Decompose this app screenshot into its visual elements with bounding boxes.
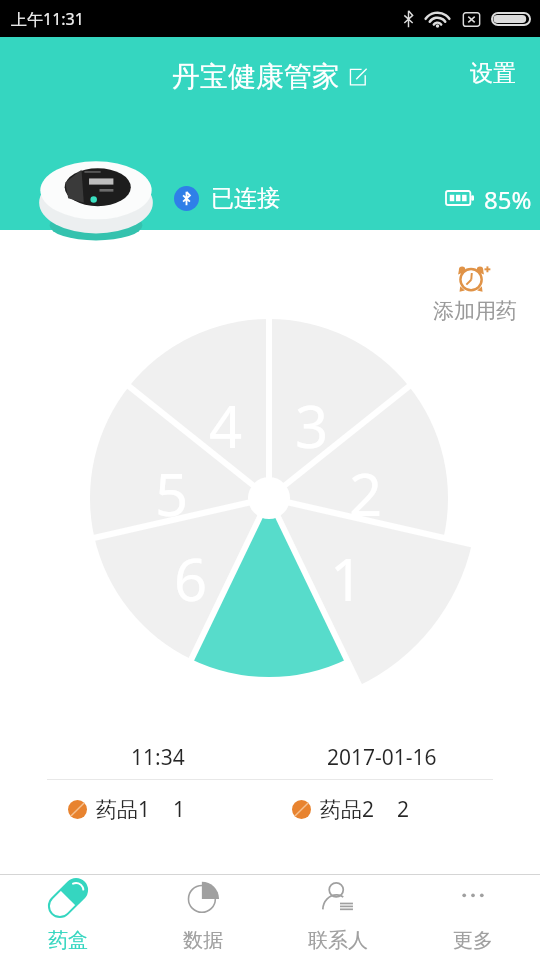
staticText: 4 xyxy=(209,386,243,465)
staticText: 6 xyxy=(174,539,208,618)
button[interactable]: 药品2 xyxy=(292,795,410,824)
staticText: 添加用药 xyxy=(433,298,517,324)
staticText: 11:34 xyxy=(131,743,185,772)
staticText: 2 xyxy=(349,454,383,533)
staticText: 85% xyxy=(484,183,532,216)
staticText: 2 xyxy=(397,795,410,824)
staticText: 更多 xyxy=(453,928,493,953)
staticText: 已连接 xyxy=(211,184,280,213)
staticText: 上午11:31 xyxy=(11,8,84,30)
button[interactable]: 联系人 xyxy=(270,874,405,960)
staticText: 3 xyxy=(295,386,329,465)
staticText: 数据 xyxy=(183,928,223,953)
button[interactable]: 数据 xyxy=(135,874,270,960)
staticText: 联系人 xyxy=(308,928,368,953)
staticText: 药盒 xyxy=(48,928,88,953)
staticText: 1 xyxy=(330,539,364,618)
staticText: 药品1 xyxy=(96,795,151,824)
staticText: 丹宝健康管家 xyxy=(172,59,340,94)
staticText: 1 xyxy=(173,795,186,824)
button[interactable]: 设置 xyxy=(470,59,516,88)
staticText: 2017-01-16 xyxy=(327,743,437,772)
staticText: 设置 xyxy=(470,59,516,88)
button[interactable]: 药品1 xyxy=(68,795,186,824)
button[interactable]: 药盒 xyxy=(0,874,135,960)
button[interactable]: 更多 xyxy=(405,874,540,960)
staticText: 药品2 xyxy=(320,795,375,824)
button[interactable]: 添加用药 xyxy=(430,261,519,324)
staticText: 5 xyxy=(155,454,189,533)
button[interactable]: 丹宝健康管家 xyxy=(172,59,367,94)
